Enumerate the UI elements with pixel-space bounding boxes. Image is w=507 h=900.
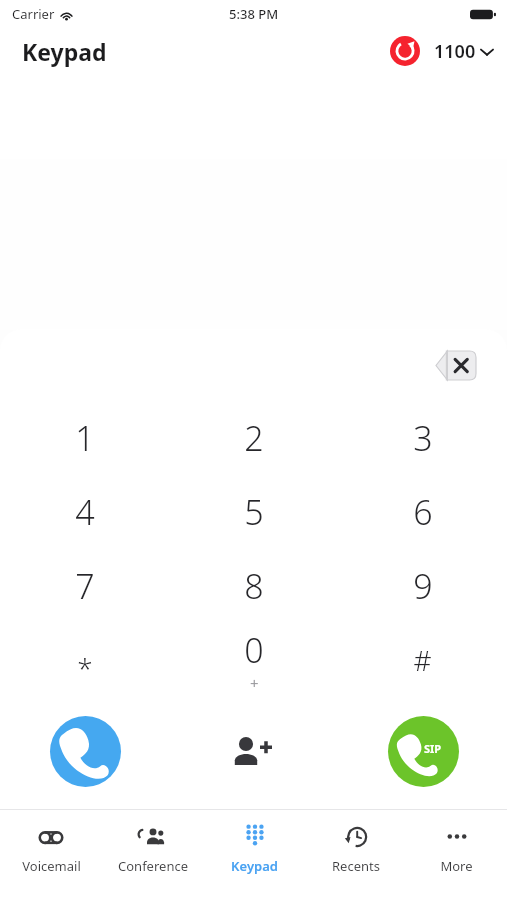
staticText: 2: [244, 415, 264, 461]
staticText: 6: [413, 489, 433, 535]
button[interactable]: 1100: [434, 39, 493, 64]
button[interactable]: 6: [338, 475, 507, 549]
button[interactable]: More: [406, 810, 507, 900]
staticText: Voicemail: [22, 857, 81, 875]
button[interactable]: Voicemail: [0, 810, 102, 900]
button[interactable]: Call: [49, 715, 121, 787]
button[interactable]: Conference: [102, 810, 204, 900]
staticText: 0: [244, 627, 264, 673]
staticText: SIP: [424, 741, 442, 756]
staticText: 7: [75, 563, 95, 609]
staticText: 4: [75, 489, 95, 535]
staticText: 1: [75, 415, 95, 461]
button[interactable]: 5: [169, 475, 338, 549]
staticText: +: [250, 673, 259, 693]
button[interactable]: Keypad: [204, 810, 305, 900]
button[interactable]: 1: [0, 401, 169, 475]
staticText: Keypad: [22, 36, 107, 67]
staticText: 8: [244, 563, 264, 609]
button[interactable]: Recents: [305, 810, 406, 900]
button[interactable]: #: [338, 623, 507, 697]
staticText: 9: [413, 563, 433, 609]
button[interactable]: 3: [338, 401, 507, 475]
button[interactable]: 8: [169, 549, 338, 623]
staticText: 1100: [434, 39, 476, 64]
staticText: Keypad: [231, 857, 278, 875]
button[interactable]: 7: [0, 549, 169, 623]
staticText: Conference: [118, 857, 188, 875]
button[interactable]: *: [0, 623, 169, 697]
button[interactable]: 9: [338, 549, 507, 623]
button[interactable]: 0: [169, 623, 338, 697]
staticText: More: [440, 857, 473, 875]
staticText: *: [77, 649, 93, 687]
staticText: Carrier: [12, 5, 55, 23]
button[interactable]: Backspace: [433, 348, 479, 382]
staticText: #: [413, 641, 432, 679]
staticText: 3: [413, 415, 433, 461]
button[interactable]: Add contact: [224, 721, 284, 781]
button[interactable]: 4: [0, 475, 169, 549]
button[interactable]: 2: [169, 401, 338, 475]
staticText: Recents: [332, 857, 380, 875]
button[interactable]: SIP call: [387, 715, 459, 787]
staticText: 5: [244, 489, 264, 535]
button[interactable]: Refresh registration: [389, 35, 421, 67]
staticText: 5:38 PM: [229, 5, 279, 23]
